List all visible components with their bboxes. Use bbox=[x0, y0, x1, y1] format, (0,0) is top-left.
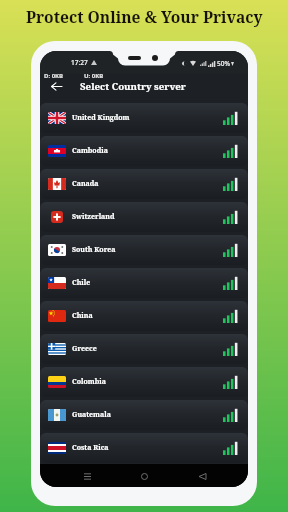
staticText: China bbox=[72, 311, 93, 321]
button[interactable]: Canada bbox=[40, 169, 248, 199]
button[interactable]: Greece bbox=[40, 334, 248, 364]
staticText: 50% bbox=[217, 59, 230, 68]
button[interactable]: Home bbox=[133, 465, 155, 487]
button[interactable]: Recents bbox=[76, 465, 98, 487]
staticText: U: 0KB bbox=[84, 72, 104, 80]
staticText: Select Country server bbox=[80, 80, 186, 93]
button[interactable]: Chile bbox=[40, 268, 248, 298]
button[interactable]: South Korea bbox=[40, 235, 248, 265]
button[interactable]: Back bbox=[46, 76, 66, 96]
staticText: Protect Online & Your Privacy bbox=[26, 6, 263, 27]
button[interactable]: United Kingdom bbox=[40, 103, 248, 133]
button[interactable]: Colombia bbox=[40, 367, 248, 397]
staticText: Greece bbox=[72, 344, 97, 354]
button[interactable]: Guatemala bbox=[40, 400, 248, 430]
staticText: Guatemala bbox=[72, 410, 111, 420]
button[interactable]: Cambodia bbox=[40, 136, 248, 166]
staticText: South Korea bbox=[72, 245, 116, 255]
staticText: United Kingdom bbox=[72, 113, 130, 123]
staticText: Costa Rica bbox=[72, 443, 109, 453]
staticText: D: 0KB bbox=[44, 72, 64, 80]
staticText: Colombia bbox=[72, 377, 106, 387]
staticText: Canada bbox=[72, 179, 99, 189]
button[interactable]: Back bbox=[191, 465, 213, 487]
staticText: Chile bbox=[72, 278, 91, 288]
button[interactable]: Costa Rica bbox=[40, 433, 248, 463]
staticText: Cambodia bbox=[72, 146, 108, 156]
button[interactable]: China bbox=[40, 301, 248, 331]
staticText: Switzerland bbox=[72, 212, 115, 222]
button[interactable]: Switzerland bbox=[40, 202, 248, 232]
staticText: 17:27 bbox=[71, 58, 88, 67]
